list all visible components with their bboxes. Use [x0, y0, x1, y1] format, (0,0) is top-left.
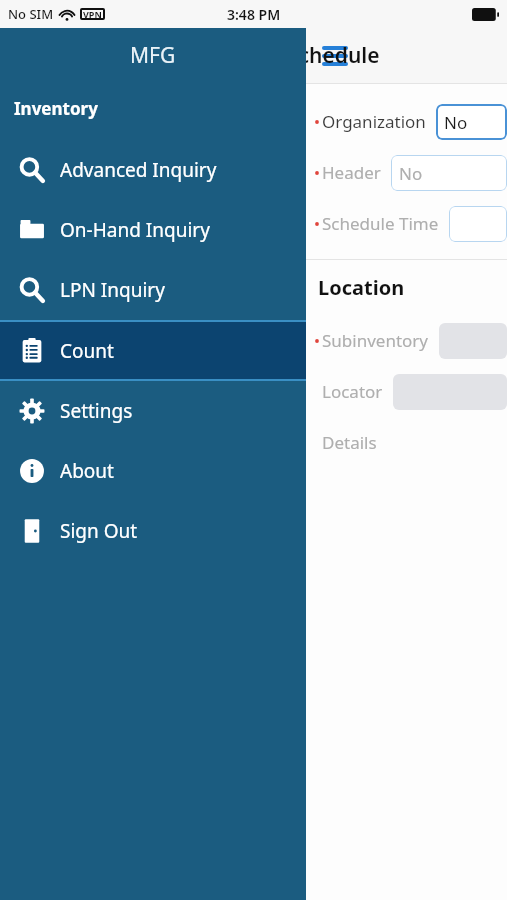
staticText: Details: [322, 431, 377, 454]
staticText: About: [60, 458, 114, 484]
staticText: Location: [318, 274, 405, 301]
staticText: Settings: [60, 398, 133, 424]
button[interactable]: No: [436, 104, 507, 140]
staticText: Header: [322, 161, 381, 184]
button[interactable]: About: [0, 441, 306, 501]
staticText: MFG: [130, 41, 176, 70]
staticText: Locator: [322, 380, 383, 403]
button[interactable]: Sign Out: [0, 501, 306, 561]
staticText: Schedule: [287, 41, 380, 70]
staticText: 3:48 PM: [227, 5, 281, 24]
staticText: Schedule Time: [322, 212, 439, 235]
button[interactable]: LPN Inquiry: [0, 260, 306, 320]
staticText: Advanced Inquiry: [60, 157, 217, 183]
staticText: Organization: [322, 110, 426, 133]
staticText: Inventory: [14, 97, 98, 120]
staticText: VPN: [83, 8, 102, 20]
button[interactable]: On-Hand Inquiry: [0, 200, 306, 260]
staticText: No SIM: [8, 5, 54, 23]
staticText: On-Hand Inquiry: [60, 217, 210, 243]
staticText: LPN Inquiry: [60, 277, 165, 303]
button[interactable]: [449, 206, 507, 242]
button[interactable]: Count: [0, 322, 306, 379]
button[interactable]: Menu: [313, 34, 357, 78]
staticText: No: [444, 111, 468, 134]
staticText: Sign Out: [60, 518, 138, 544]
staticText: Subinventory: [322, 329, 429, 352]
button[interactable]: Settings: [0, 381, 306, 441]
button[interactable]: Advanced Inquiry: [0, 140, 306, 200]
button[interactable]: No: [391, 155, 507, 191]
staticText: No: [399, 162, 423, 185]
staticText: Count: [60, 338, 114, 364]
